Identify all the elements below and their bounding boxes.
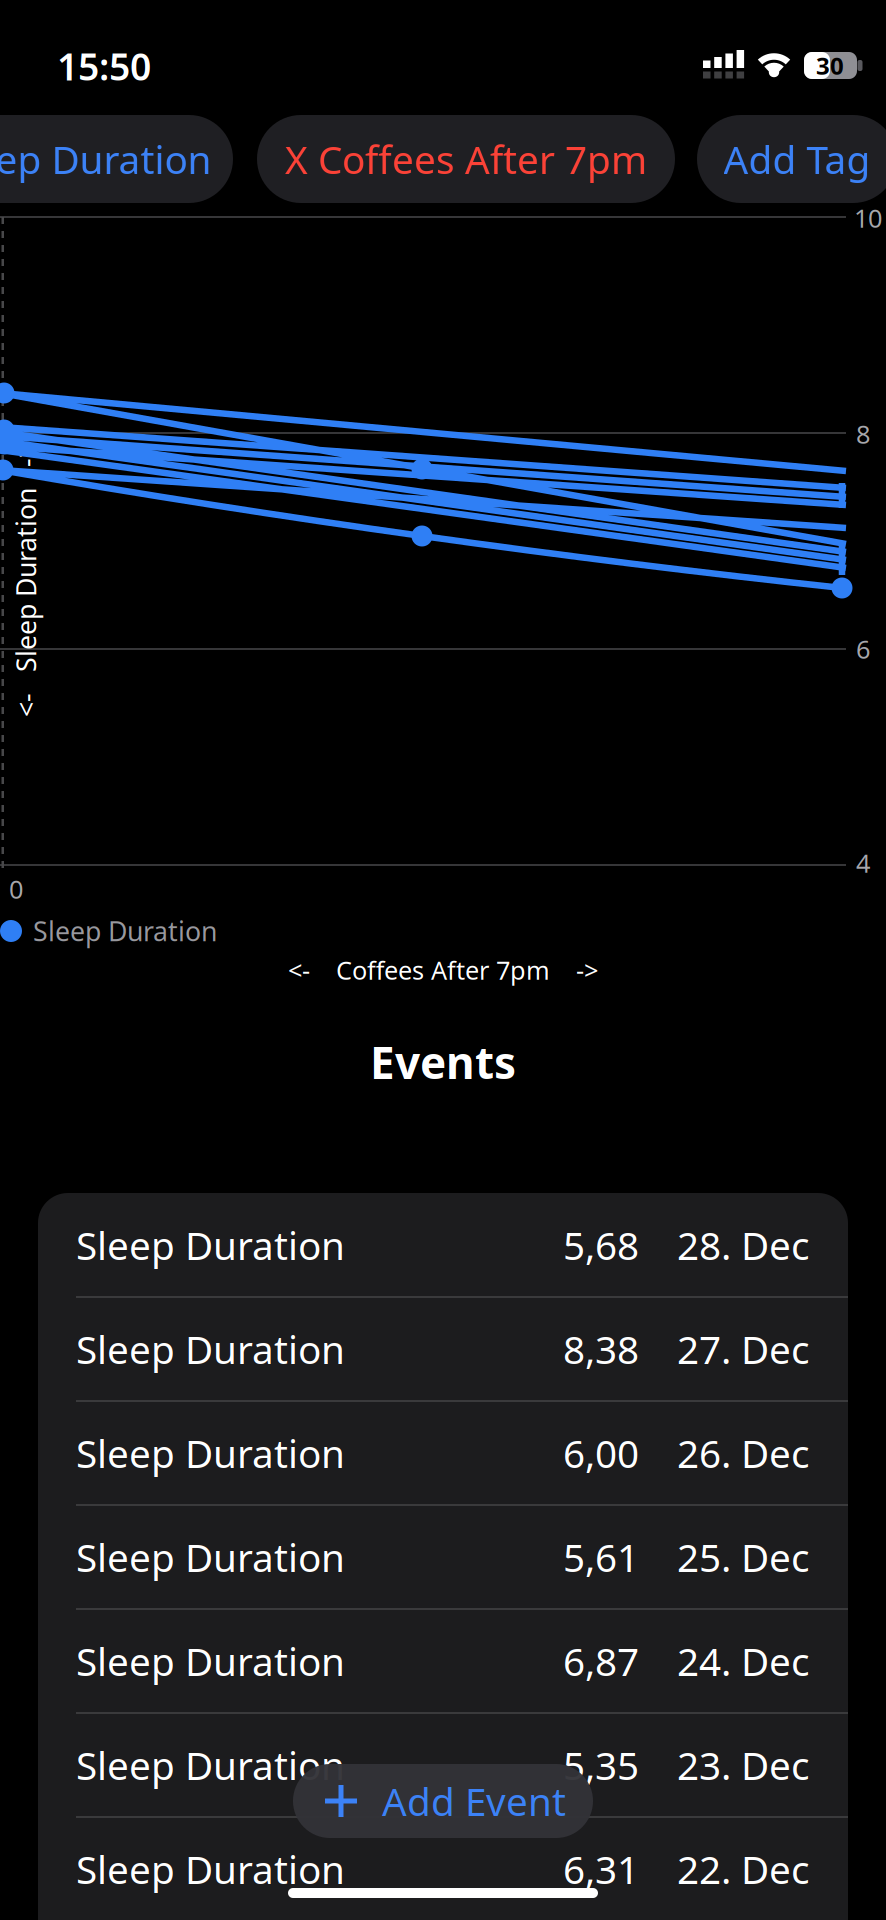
button[interactable]: Add Tag — [697, 115, 886, 203]
staticText: Coffees After 7pm — [336, 953, 550, 987]
staticText: 4 — [856, 846, 870, 880]
staticText: Sleep Duration — [76, 1219, 345, 1271]
staticText: 6 — [856, 632, 870, 666]
staticText: 8 — [856, 417, 870, 451]
staticText: 28. Dec — [677, 1219, 810, 1271]
staticText: Sleep Duration — [76, 1843, 345, 1895]
staticText: Events — [370, 1033, 516, 1091]
staticText: 6,00 — [563, 1427, 639, 1479]
staticText: 6,87 — [563, 1635, 639, 1687]
staticText: 26. Dec — [677, 1427, 810, 1479]
staticText: Sleep Duration — [33, 913, 217, 949]
staticText: X Coffees After 7pm — [285, 133, 647, 185]
staticText: 25. Dec — [677, 1531, 810, 1583]
staticText: Add Tag — [723, 133, 870, 185]
staticText: Sleep Duration — [76, 1531, 345, 1583]
button[interactable]: Sleep Duration — [38, 1817, 848, 1920]
staticText: 22. Dec — [677, 1843, 810, 1895]
button[interactable]: Sleep Duration — [38, 1193, 848, 1297]
button[interactable]: Sleep Duration — [0, 115, 233, 203]
button[interactable]: X Coffees After 7pm — [257, 115, 675, 203]
staticText: Add Event — [382, 1775, 566, 1827]
staticText: Sleep Duration — [76, 1427, 345, 1479]
button[interactable]: Sleep Duration — [38, 1609, 848, 1713]
staticText: 24. Dec — [677, 1635, 810, 1687]
staticText: 23. Dec — [677, 1739, 810, 1791]
staticText: <- — [288, 953, 310, 987]
staticText: 8,38 — [563, 1323, 639, 1375]
staticText: Sleep Duration — [76, 1739, 345, 1791]
button[interactable]: Sleep Duration — [38, 1297, 848, 1401]
staticText: 15:50 — [57, 41, 151, 91]
button[interactable]: Sleep Duration — [38, 1505, 848, 1609]
staticText: <- Sleep Duration -> — [0, 562, 163, 598]
staticText: Sleep Duration — [76, 1635, 345, 1687]
staticText: 6,31 — [563, 1843, 639, 1895]
staticText: 10 — [854, 201, 882, 235]
staticText: 5,35 — [563, 1739, 639, 1791]
staticText: 5,68 — [563, 1219, 639, 1271]
staticText: Sleep Duration — [76, 1323, 345, 1375]
staticText: 5,61 — [563, 1531, 639, 1583]
staticText: 30 — [816, 50, 844, 81]
button[interactable]: Sleep Duration — [38, 1713, 848, 1817]
staticText: 27. Dec — [677, 1323, 810, 1375]
button[interactable]: Add Event — [293, 1764, 593, 1838]
staticText: -> — [576, 953, 598, 987]
button[interactable]: Sleep Duration — [38, 1401, 848, 1505]
staticText: 0 — [9, 872, 23, 906]
staticText: Sleep Duration — [0, 133, 211, 185]
